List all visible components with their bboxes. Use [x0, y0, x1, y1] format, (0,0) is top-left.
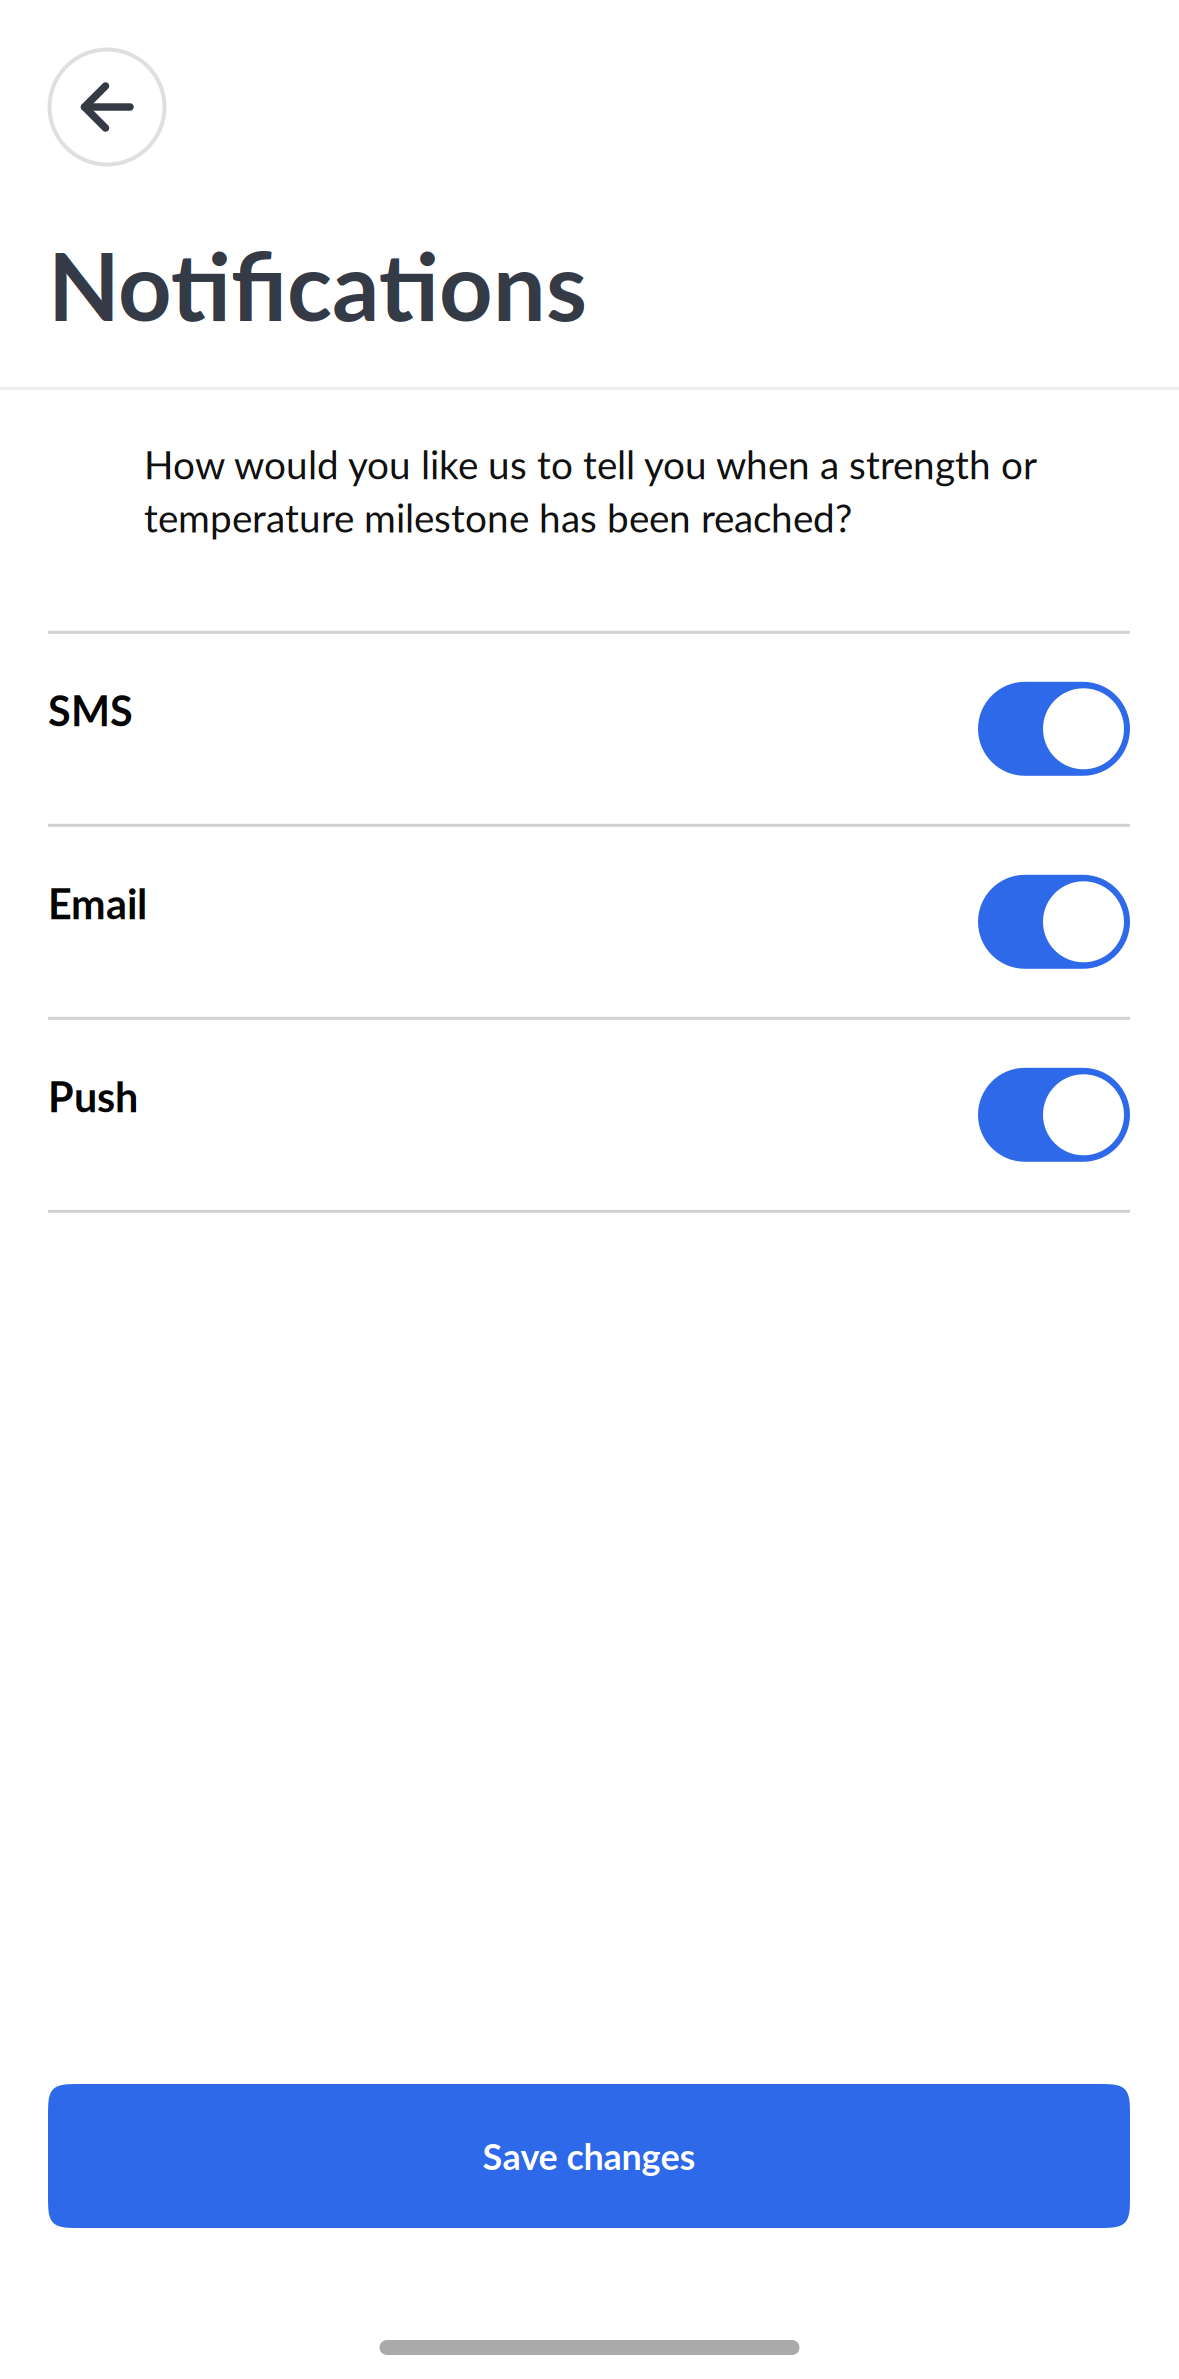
button[interactable]: SMS [0, 634, 1179, 824]
staticText: How would you like us to tell you when a… [144, 441, 1036, 541]
staticText: Push [48, 1071, 138, 1121]
button[interactable]: Push [0, 1020, 1179, 1210]
staticText: Save changes [482, 2134, 695, 2178]
button[interactable]: Back [48, 48, 166, 166]
staticText: SMS [48, 685, 133, 735]
staticText: Notifications [48, 229, 587, 341]
button[interactable]: Email [0, 827, 1179, 1017]
staticText: Email [48, 878, 147, 928]
button[interactable]: Save changes [48, 2084, 1130, 2228]
